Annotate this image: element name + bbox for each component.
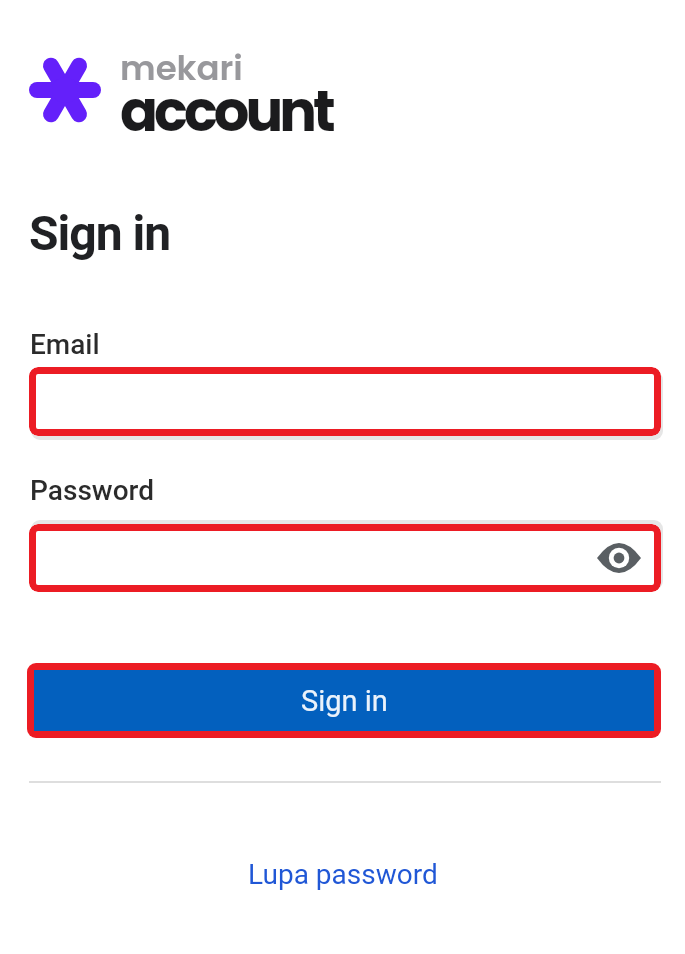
staticText: Email — [30, 328, 100, 361]
button[interactable]: Lupa password — [248, 858, 438, 891]
staticText: mekari — [120, 44, 243, 92]
staticText: Sign in — [301, 684, 388, 718]
staticText: Password — [30, 474, 155, 507]
staticText: account — [120, 72, 332, 150]
button[interactable] — [29, 524, 661, 592]
button[interactable]: Sign in — [27, 663, 661, 738]
button[interactable] — [29, 367, 661, 436]
staticText: Sign in — [29, 205, 171, 261]
